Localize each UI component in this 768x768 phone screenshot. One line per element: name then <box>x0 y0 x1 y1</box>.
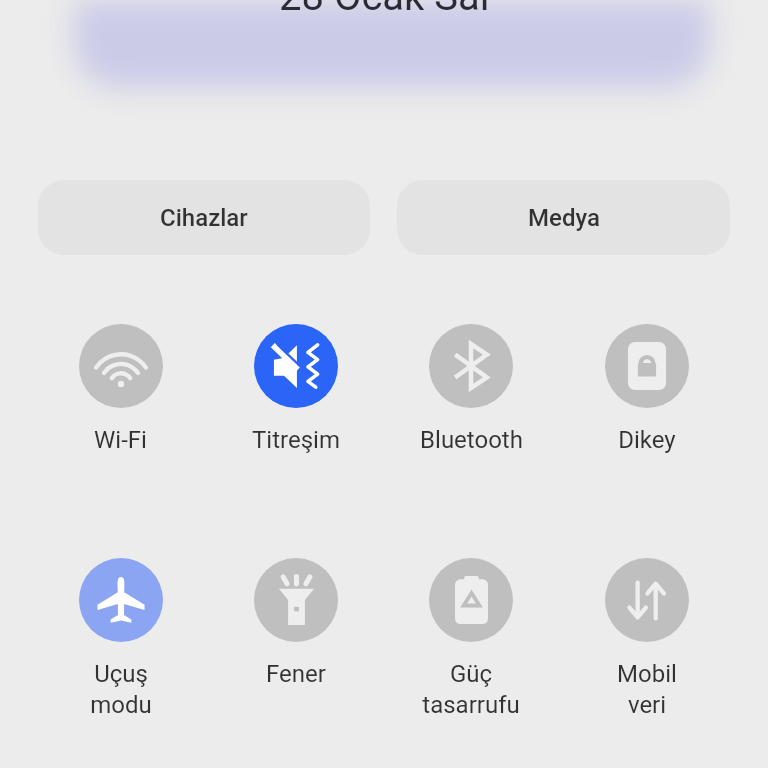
button[interactable]: Power saving <box>383 558 559 719</box>
staticText: Bluetooth <box>420 426 523 454</box>
staticText: Titreşim <box>252 426 340 454</box>
staticText: Wi-Fi <box>94 426 147 454</box>
button[interactable]: Flashlight <box>208 558 383 688</box>
staticText: Cihazlar <box>160 204 248 232</box>
button[interactable]: Vibrate <box>208 324 383 454</box>
staticText: 28 Ocak Sal <box>279 0 490 20</box>
staticText: Uçuş modu <box>90 660 152 719</box>
button[interactable]: Rotation lock <box>559 324 735 454</box>
staticText: Dikey <box>618 426 676 454</box>
button[interactable]: Wi-Fi <box>33 324 208 454</box>
button[interactable]: Airplane mode <box>33 558 208 719</box>
staticText: Güç tasarrufu <box>422 660 520 719</box>
staticText: Medya <box>528 204 600 232</box>
button[interactable]: Mobile data <box>559 558 735 719</box>
staticText: Mobil veri <box>617 660 677 719</box>
button[interactable]: Medya <box>397 180 730 255</box>
staticText: Fener <box>266 660 326 688</box>
button[interactable]: Cihazlar <box>38 180 370 255</box>
button[interactable]: Bluetooth <box>383 324 559 454</box>
